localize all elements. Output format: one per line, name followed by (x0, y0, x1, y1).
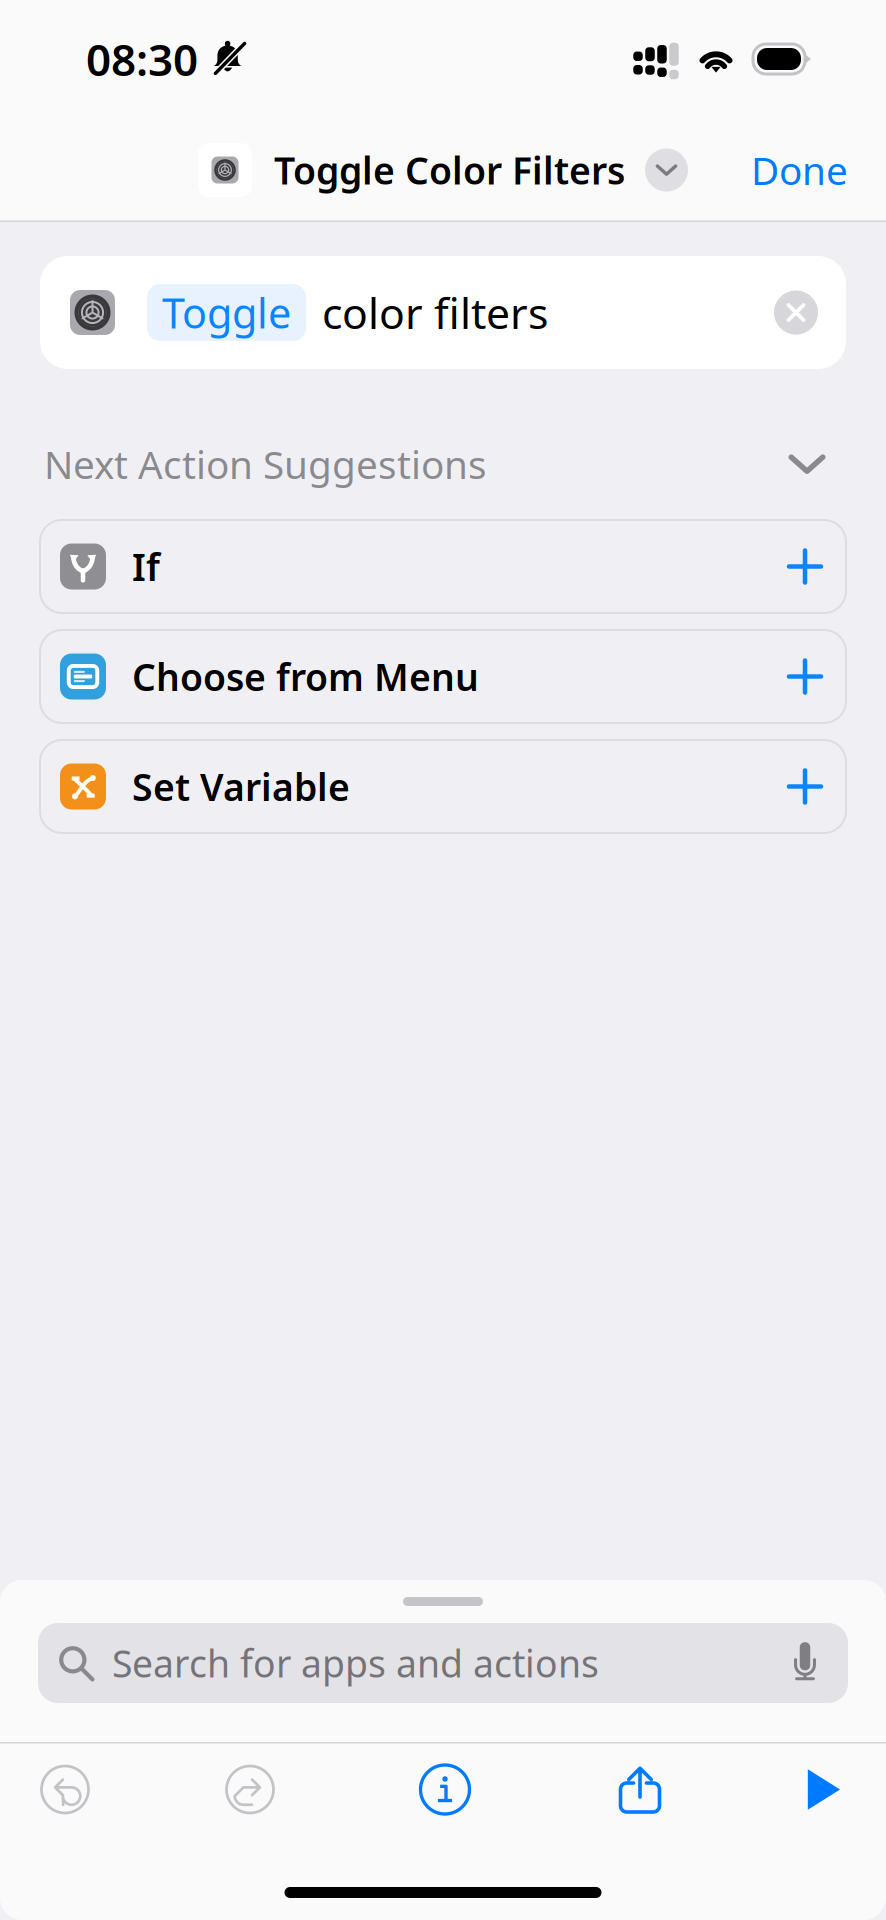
staticText: 08:30 (86, 30, 198, 88)
staticText: color filters (322, 284, 548, 341)
button[interactable]: Toggle Color Filters (198, 143, 688, 197)
button[interactable]: Done (751, 126, 886, 214)
button[interactable]: Redo (130, 1743, 370, 1835)
button[interactable]: Collapse Next Action Suggestions (776, 433, 838, 495)
button[interactable]: Shortcut details (370, 1743, 520, 1835)
button[interactable]: Run shortcut (760, 1743, 886, 1835)
button[interactable]: Choose from Menu (0, 630, 886, 723)
staticText: Toggle (162, 285, 291, 340)
button[interactable]: If (0, 520, 886, 613)
staticText: Search for apps and actions (112, 1638, 599, 1688)
staticText: Done (751, 144, 848, 196)
button[interactable]: Remove action (774, 290, 818, 334)
staticText: Toggle Color Filters (274, 145, 625, 195)
button[interactable]: Undo (0, 1743, 130, 1835)
staticText: Next Action Suggestions (44, 438, 487, 490)
staticText: Choose from Menu (132, 652, 479, 701)
staticText: Set Variable (132, 762, 350, 811)
staticText: If (132, 542, 160, 591)
button[interactable]: Share (520, 1743, 760, 1835)
button[interactable]: Set Variable (0, 740, 886, 833)
